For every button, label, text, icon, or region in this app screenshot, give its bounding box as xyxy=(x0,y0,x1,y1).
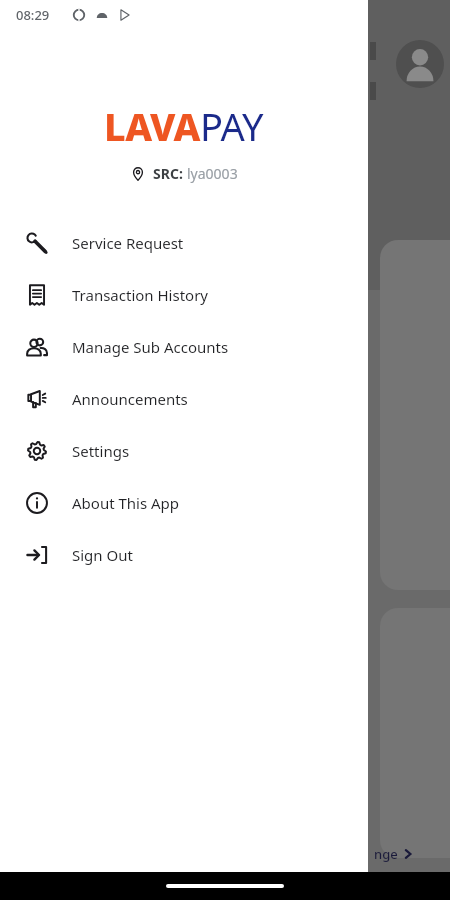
staticText: Service Request xyxy=(72,233,184,253)
staticText: Announcements xyxy=(72,389,188,409)
button[interactable]: Transaction History xyxy=(0,269,368,321)
button[interactable]: Manage Sub Accounts xyxy=(0,321,368,373)
staticText: lya0003 xyxy=(187,164,238,183)
button[interactable]: Sign Out xyxy=(0,529,368,581)
staticText: LAVA xyxy=(104,100,200,152)
button[interactable]: About This App xyxy=(0,477,368,529)
button[interactable]: Announcements xyxy=(0,373,368,425)
staticText: 08:29 xyxy=(16,6,50,24)
staticText: Settings xyxy=(72,441,130,461)
button[interactable]: Settings xyxy=(0,425,368,477)
staticText: SRC: xyxy=(153,164,187,183)
staticText: About This App xyxy=(72,493,180,513)
staticText: Manage Sub Accounts xyxy=(72,337,229,357)
staticText: PAY xyxy=(200,100,264,152)
staticText: nge xyxy=(374,845,398,863)
staticText: Sign Out xyxy=(72,545,133,565)
staticText: Transaction History xyxy=(72,285,209,305)
button[interactable]: Service Request xyxy=(0,217,368,269)
